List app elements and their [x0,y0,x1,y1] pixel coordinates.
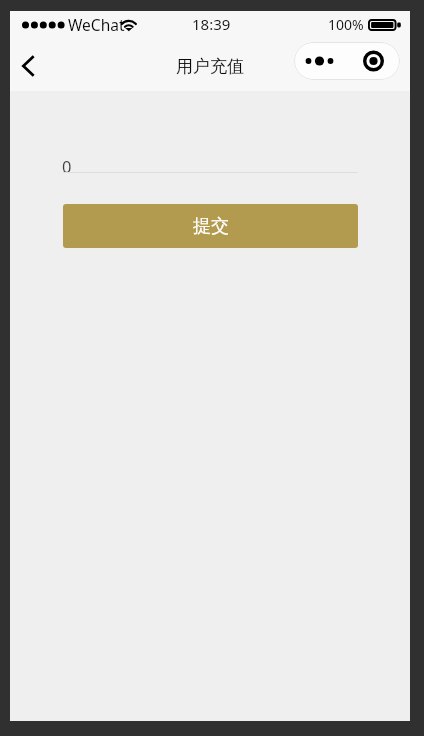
staticText: 18:39 [192,14,231,34]
staticText: 提交 [193,215,229,238]
button[interactable]: Back [10,43,47,89]
staticText: 0 [62,155,72,177]
button[interactable]: More options [294,42,347,80]
staticText: WeChat [68,14,125,35]
button[interactable]: 提交 [63,204,358,248]
button[interactable]: 0 [62,144,358,173]
button[interactable]: Close mini program [347,42,400,80]
staticText: 用户充值 [176,56,244,77]
staticText: 100% [328,15,364,34]
